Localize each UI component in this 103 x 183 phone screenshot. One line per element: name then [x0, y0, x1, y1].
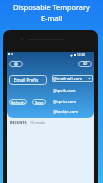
staticText: Email Prefix: [14, 77, 39, 83]
staticText: 12:30: [77, 53, 86, 57]
staticText: Disposable Temporary: [13, 2, 90, 12]
staticText: AD: [83, 62, 88, 66]
staticText: 15 emails: [30, 120, 46, 125]
button[interactable]: @tashje.com: [52, 108, 93, 115]
staticText: Save: [35, 100, 44, 105]
staticText: RECENTS: [10, 120, 27, 125]
button[interactable]: Settings: [9, 61, 23, 67]
staticText: @tashje.com: [53, 109, 79, 115]
staticText: @sprio.com: [53, 99, 77, 105]
button[interactable]: Email Prefix: [9, 75, 47, 85]
button[interactable]: @qwik.com: [52, 87, 93, 94]
staticText: Refresh: [11, 100, 25, 105]
button[interactable]: RECENTS: [10, 120, 27, 125]
staticText: E-mail: [41, 13, 63, 23]
button[interactable]: Save: [32, 99, 46, 105]
button[interactable]: AD: [78, 61, 92, 67]
staticText: @qwik.com: [53, 88, 76, 94]
button[interactable]: Refresh: [9, 99, 27, 105]
staticText: @mailnull.com: [53, 76, 83, 82]
button[interactable]: @sprio.com: [52, 98, 93, 105]
button[interactable]: @mailnull.com: [52, 75, 93, 82]
